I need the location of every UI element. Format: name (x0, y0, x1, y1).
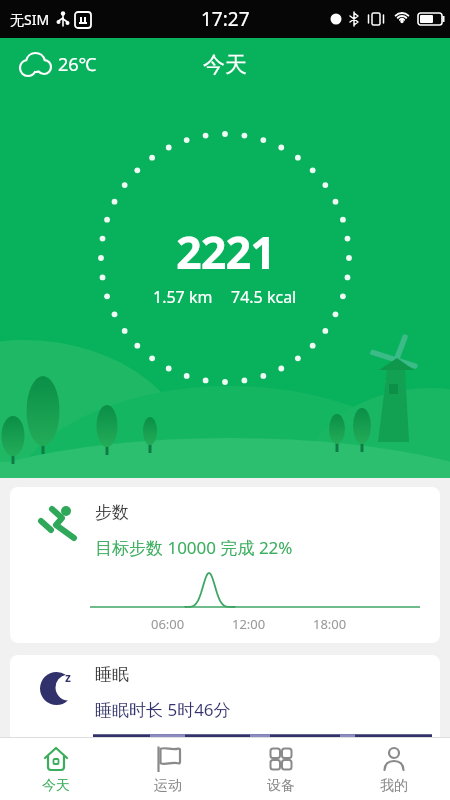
button[interactable]: 我的 (337, 738, 450, 800)
staticText: 今天 (42, 777, 70, 795)
staticText: 我的 (380, 777, 408, 795)
button[interactable]: 步数 (10, 487, 440, 643)
staticText: 18:00 (313, 615, 347, 633)
staticText: z (65, 669, 71, 685)
staticText: 睡眠时长 5时46分 (95, 698, 231, 721)
staticText: 步数 (95, 502, 129, 523)
staticText: 目标步数 10000 完成 22% (95, 536, 293, 559)
button[interactable]: 运动 (112, 738, 224, 800)
button[interactable]: 设备 (224, 738, 337, 800)
staticText: 无SIM (10, 10, 50, 29)
staticText: 74.5 kcal (231, 286, 297, 308)
staticText: 睡眠 (95, 664, 129, 685)
staticText: 2221 (176, 221, 275, 282)
staticText: 运动 (154, 777, 182, 795)
staticText: 26℃ (58, 52, 97, 77)
staticText: 17:27 (201, 6, 250, 32)
staticText: 06:00 (151, 615, 185, 633)
staticText: 12:00 (232, 615, 266, 633)
button[interactable]: 今天 (0, 738, 112, 800)
button[interactable]: z (10, 655, 440, 755)
staticText: 1.57 km (153, 286, 213, 308)
staticText: 设备 (267, 777, 295, 795)
staticText: 今天 (203, 51, 247, 79)
